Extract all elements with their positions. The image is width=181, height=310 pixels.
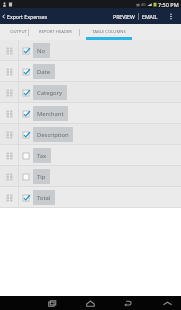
button[interactable]: Total — [0, 187, 181, 208]
staticText: Total — [37, 194, 51, 202]
button[interactable]: Home — [78, 296, 102, 310]
button[interactable]: Tax — [0, 145, 181, 166]
staticText: EMAIL — [142, 13, 158, 20]
staticText: Tip — [37, 173, 46, 181]
button[interactable]: Date — [0, 61, 181, 82]
button[interactable]: PREVIEW — [109, 8, 138, 24]
staticText: 4G — [141, 2, 146, 7]
button[interactable]: Tip — [0, 166, 181, 187]
button[interactable]: Show navigation — [155, 296, 179, 310]
staticText: TABLE COLUMNS — [92, 29, 126, 35]
staticText: Tax — [37, 152, 47, 160]
staticText: Category — [37, 89, 63, 97]
staticText: 7:50 PM — [158, 1, 179, 8]
button[interactable]: EMAIL — [139, 8, 161, 24]
button[interactable]: TABLE COLUMNS — [80, 24, 138, 40]
staticText: PREVIEW — [113, 13, 135, 20]
button[interactable]: Back — [115, 296, 139, 310]
button[interactable]: OUTPUT — [0, 24, 28, 40]
staticText: OUTPUT — [10, 29, 27, 35]
button[interactable]: Recent apps — [40, 296, 64, 310]
button[interactable]: No — [0, 40, 181, 61]
button[interactable]: Category — [0, 82, 181, 103]
staticText: Date — [37, 68, 51, 76]
staticText: No — [37, 47, 46, 55]
button[interactable]: Export Expenses — [0, 8, 51, 24]
button[interactable]: Description — [0, 124, 181, 145]
button[interactable]: More options — [161, 8, 181, 24]
button[interactable]: Merchant — [0, 103, 181, 124]
staticText: Export Expenses — [7, 13, 48, 20]
staticText: REPORT HEADER — [39, 29, 72, 35]
staticText: Description — [37, 131, 69, 139]
button[interactable]: REPORT HEADER — [29, 24, 79, 40]
staticText: Merchant — [37, 110, 64, 118]
